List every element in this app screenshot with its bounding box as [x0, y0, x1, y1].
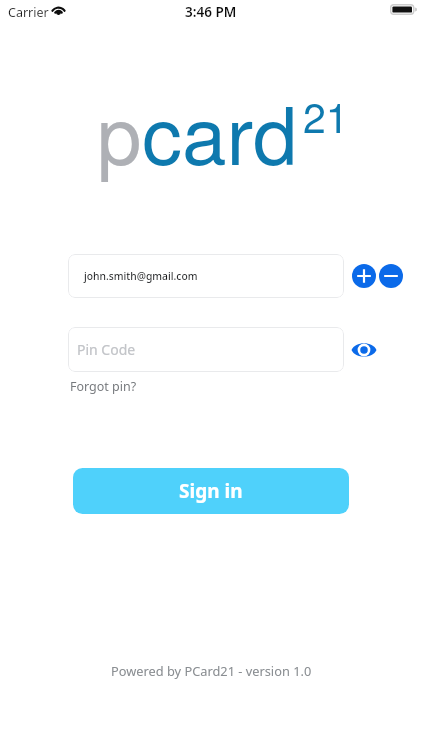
staticText: john.smith@gmail.com: [84, 269, 198, 283]
staticText: Forgot pin?: [70, 378, 137, 395]
button[interactable]: john.smith@gmail.com: [68, 254, 344, 298]
button[interactable]: Show pin code: [349, 336, 379, 364]
staticText: Pin Code: [77, 340, 136, 359]
button[interactable]: Add account: [352, 264, 376, 288]
button[interactable]: Forgot pin?: [69, 376, 138, 397]
staticText: Carrier: [8, 4, 49, 21]
staticText: 3:46 PM: [185, 3, 237, 21]
button[interactable]: Pin Code: [68, 327, 344, 372]
staticText: Powered by PCard21 - version 1.0: [111, 662, 312, 679]
staticText: 21: [303, 86, 349, 145]
button[interactable]: Remove account: [379, 264, 403, 288]
staticText: p: [97, 73, 142, 188]
staticText: Sign in: [179, 478, 243, 504]
staticText: card: [142, 73, 298, 188]
button[interactable]: Sign in: [73, 468, 349, 514]
